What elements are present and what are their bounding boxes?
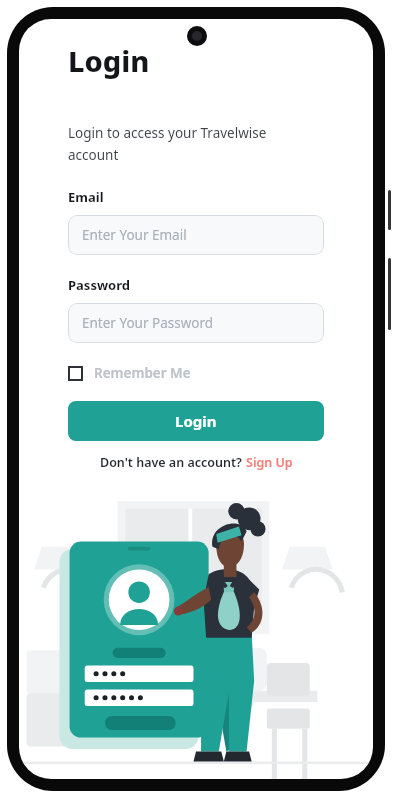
staticText: Enter Your Password bbox=[82, 314, 214, 332]
staticText: Login bbox=[68, 41, 150, 80]
button[interactable]: Enter Your Email bbox=[68, 215, 324, 255]
button[interactable]: Enter Your Password bbox=[68, 303, 324, 343]
staticText: Password bbox=[68, 276, 130, 294]
staticText: Remember Me bbox=[94, 364, 191, 382]
staticText: Don't have an account? bbox=[100, 454, 246, 471]
staticText: Sign Up bbox=[246, 454, 293, 471]
staticText: Email bbox=[68, 188, 104, 206]
staticText: Enter Your Email bbox=[82, 226, 187, 244]
staticText: Login to access your Travelwise bbox=[68, 124, 267, 142]
staticText: account bbox=[68, 146, 119, 164]
button[interactable]: Remember Me bbox=[68, 361, 191, 385]
staticText: Login bbox=[175, 411, 217, 431]
button[interactable]: Sign Up bbox=[246, 454, 293, 471]
button[interactable]: Login bbox=[68, 401, 324, 441]
